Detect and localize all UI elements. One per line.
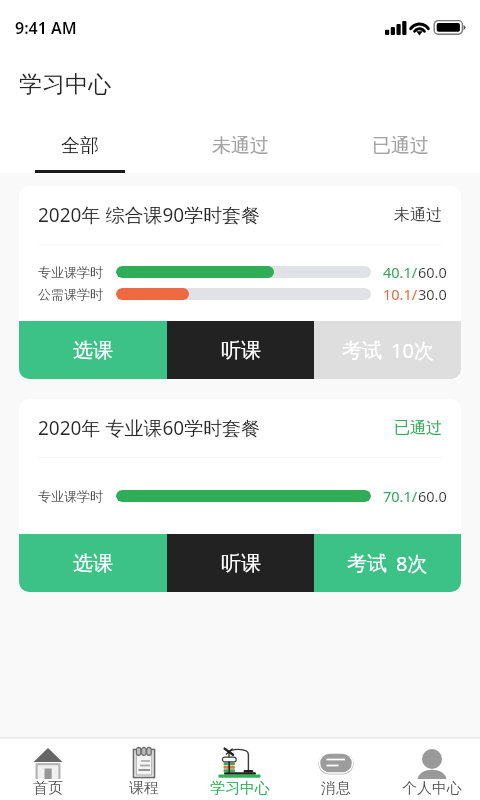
staticText: 考试	[342, 338, 382, 363]
button[interactable]: 听课	[167, 534, 314, 592]
button[interactable]: 选课	[19, 534, 167, 592]
staticText: 专业课学时	[38, 488, 103, 504]
button[interactable]: 课程	[96, 739, 192, 800]
staticText: 考试	[347, 551, 387, 576]
other: 学习中心	[218, 746, 262, 778]
staticText: 30.0	[418, 284, 447, 304]
staticText: 选课	[73, 551, 113, 576]
button[interactable]: 个人中心	[384, 739, 480, 800]
staticText: 听课	[221, 551, 261, 576]
staticText: 学习中心	[210, 779, 270, 798]
button[interactable]: 首页	[0, 739, 96, 800]
button[interactable]: 选课	[19, 321, 167, 379]
staticText: 10.1/	[383, 284, 418, 304]
button[interactable]: 考试	[314, 534, 461, 592]
staticText: 60.0	[418, 262, 447, 282]
staticText: 2020年 综合课90学时套餐	[38, 202, 261, 228]
other: 消息	[317, 749, 355, 775]
button[interactable]: 全部	[0, 128, 160, 173]
staticText: 公需课学时	[38, 286, 103, 302]
staticText: 60.0	[418, 486, 447, 506]
button[interactable]: 2020年 专业课60学时套餐	[19, 399, 461, 592]
staticText: 未通过	[394, 205, 442, 225]
staticText: 选课	[73, 338, 113, 363]
staticText: 70.1/	[383, 486, 418, 506]
other: 首页	[33, 746, 63, 778]
staticText: 40.1/	[383, 262, 418, 282]
staticText: 全部	[61, 134, 99, 158]
staticText: 消息	[321, 779, 351, 798]
button[interactable]: 消息	[288, 739, 384, 800]
staticText: 已通过	[394, 418, 442, 438]
staticText: 9:41 AM	[15, 17, 77, 39]
staticText: 学习中心	[19, 70, 111, 99]
staticText: 2020年 专业课60学时套餐	[38, 415, 261, 441]
button[interactable]: 2020年 综合课90学时套餐	[19, 186, 461, 379]
staticText: 8次	[396, 550, 428, 577]
button[interactable]: 学习中心	[192, 739, 288, 800]
staticText: 个人中心	[402, 779, 462, 798]
staticText: 首页	[33, 779, 63, 798]
staticText: 课程	[129, 779, 159, 798]
other: 个人中心	[416, 746, 448, 778]
other: 课程	[129, 746, 159, 778]
button[interactable]: 听课	[167, 321, 314, 379]
staticText: 已通过	[372, 134, 429, 158]
staticText: 未通过	[212, 134, 269, 158]
staticText: 专业课学时	[38, 264, 103, 280]
staticText: 10次	[391, 337, 434, 364]
button[interactable]: 已通过	[320, 128, 480, 173]
button[interactable]: 未通过	[160, 128, 320, 173]
button[interactable]: 考试	[314, 321, 461, 379]
staticText: 听课	[221, 338, 261, 363]
